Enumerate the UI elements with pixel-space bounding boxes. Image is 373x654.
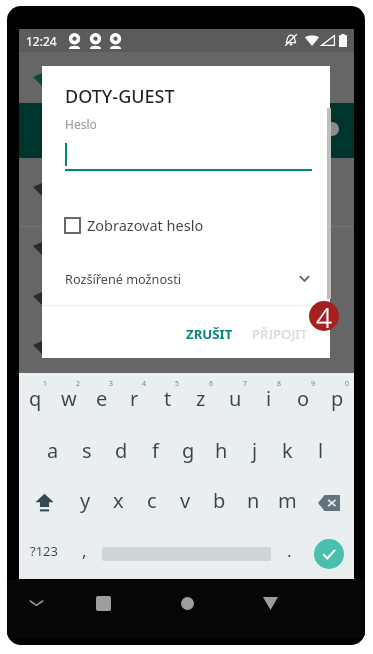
button[interactable]: 4 [118, 373, 151, 425]
button[interactable]: Back [252, 585, 288, 621]
button[interactable]: , [69, 529, 99, 579]
staticText: c [147, 487, 157, 514]
button[interactable]: h [205, 425, 238, 477]
button[interactable]: Recent apps [85, 585, 121, 621]
staticText: a [47, 437, 59, 464]
button[interactable]: x [102, 477, 135, 529]
button[interactable]: 6 [184, 373, 218, 425]
button[interactable]: y [69, 477, 102, 529]
staticText: 6 [209, 379, 214, 389]
staticText: Heslo [65, 116, 97, 132]
button[interactable]: 9 [286, 373, 320, 425]
button[interactable]: 8 [252, 373, 286, 425]
staticText: PŘIPOJIT [252, 325, 308, 343]
staticText: v [180, 487, 191, 514]
button[interactable]: 5 [151, 373, 184, 425]
button[interactable]: ?123 [19, 529, 69, 579]
button[interactable]: 3 [85, 373, 118, 425]
button[interactable]: c [135, 477, 168, 529]
staticText: 3 [109, 379, 114, 389]
button[interactable]: 0 [320, 373, 354, 425]
button[interactable]: 7 [218, 373, 252, 425]
button[interactable]: a [36, 425, 70, 477]
button[interactable]: d [104, 425, 138, 477]
button[interactable]: v [168, 477, 202, 529]
staticText: . [287, 539, 292, 562]
staticText: x [113, 487, 124, 514]
staticText: 5 [175, 379, 180, 389]
button[interactable] [59, 212, 259, 239]
staticText: 4 [316, 301, 332, 328]
button[interactable] [175, 314, 243, 354]
staticText: q [29, 385, 42, 412]
staticText: g [182, 437, 195, 464]
button[interactable]: m [270, 477, 304, 529]
staticText: k [282, 437, 293, 464]
button[interactable]: . [274, 529, 304, 579]
staticText: w [61, 385, 77, 412]
staticText: n [247, 487, 260, 514]
button[interactable]: n [236, 477, 270, 529]
staticText: 4 [142, 379, 147, 389]
staticText: 1 [43, 379, 48, 389]
button[interactable]: Hide keyboard [18, 585, 54, 621]
staticText: 8 [277, 379, 282, 389]
button[interactable]: k [271, 425, 304, 477]
button[interactable]: Shift [19, 477, 69, 529]
staticText: DOTY-GUEST [65, 84, 175, 109]
staticText: , [82, 539, 87, 562]
staticText: 7 [243, 379, 248, 389]
staticText: Zobrazovat heslo [87, 215, 204, 235]
staticText: Rozšířené možnosti [65, 270, 182, 287]
staticText: 0 [345, 379, 350, 389]
staticText: 12:24 [26, 33, 57, 49]
button[interactable] [42, 264, 330, 294]
button[interactable]: 1 [19, 373, 52, 425]
button[interactable]: b [202, 477, 236, 529]
staticText: j [252, 437, 258, 464]
staticText: p [331, 385, 344, 412]
staticText: y [80, 487, 91, 514]
button[interactable]: Backspace [304, 477, 354, 529]
button[interactable] [243, 314, 319, 354]
button[interactable] [99, 529, 274, 579]
staticText: s [82, 437, 92, 464]
button[interactable]: l [304, 425, 337, 477]
staticText: t [164, 385, 172, 412]
staticText: 9 [311, 379, 316, 389]
staticText: ZRUŠIT [186, 325, 233, 343]
staticText: m [278, 487, 297, 514]
staticText: u [229, 385, 242, 412]
staticText: d [115, 437, 128, 464]
button[interactable]: f [138, 425, 172, 477]
staticText: b [213, 487, 226, 514]
button[interactable]: j [238, 425, 271, 477]
staticText: f [152, 437, 159, 464]
button[interactable]: Enter [304, 529, 354, 579]
staticText: o [297, 385, 310, 412]
button[interactable]: g [172, 425, 205, 477]
staticText: 2 [76, 379, 81, 389]
button[interactable]: 2 [52, 373, 85, 425]
staticText: ?123 [30, 542, 58, 560]
button[interactable]: s [70, 425, 104, 477]
staticText: z [196, 385, 206, 412]
staticText: i [266, 385, 272, 412]
staticText: h [215, 437, 228, 464]
staticText: l [318, 437, 324, 464]
staticText: r [130, 385, 139, 412]
button[interactable]: Home [169, 585, 205, 621]
staticText: e [96, 385, 108, 412]
